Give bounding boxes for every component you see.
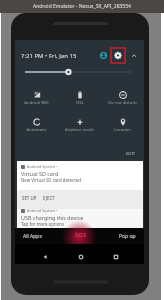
button[interactable]	[15, 91, 58, 99]
staticText: Pop up	[119, 233, 136, 240]
staticText: All Apps	[23, 233, 42, 240]
button[interactable]	[58, 118, 101, 126]
button[interactable]: Back	[42, 254, 48, 260]
staticText: EJECT	[43, 195, 55, 201]
button[interactable]: EJECT	[42, 195, 56, 201]
button[interactable]: Recent apps	[113, 254, 119, 260]
staticText: Virtual SD card	[21, 170, 59, 177]
staticText: Android System •	[27, 208, 58, 213]
staticText: Android Emulator - Nexus_5X_API_283554	[33, 3, 131, 10]
button[interactable]	[15, 118, 58, 126]
staticText: Airplane mode	[65, 127, 94, 133]
staticText: DSL	[76, 100, 84, 106]
staticText: New Virtual SD card detected	[21, 177, 81, 183]
staticText: Do not disturb	[108, 100, 137, 106]
staticText: USB charging this device	[21, 214, 84, 221]
button[interactable]	[101, 91, 144, 99]
button[interactable]	[58, 91, 101, 99]
staticText: 7:21 PM • Fri, Jan 15	[21, 52, 77, 60]
button[interactable]: Android System •	[21, 164, 81, 183]
staticText: Location	[114, 127, 131, 133]
staticText: SET UP	[22, 195, 37, 201]
button[interactable]: All Apps	[23, 233, 42, 240]
staticText: Tap for more options	[21, 221, 65, 227]
button[interactable]: Android System •	[17, 209, 143, 228]
staticText: EDIT	[126, 151, 136, 157]
button[interactable]	[101, 118, 144, 126]
button[interactable]: Home	[78, 254, 84, 260]
button[interactable]: EDIT	[125, 150, 136, 157]
button[interactable]: SET UP	[21, 195, 38, 201]
staticText: SOS	[75, 231, 87, 239]
button[interactable]: SOS	[75, 231, 87, 239]
staticText: Android Wifi	[24, 100, 49, 106]
staticText: Android System •	[27, 164, 58, 169]
staticText: Automatic	[26, 127, 47, 133]
button[interactable]: User account	[100, 52, 107, 59]
button[interactable]: Settings	[111, 48, 125, 63]
button[interactable]: Pop up	[119, 233, 136, 240]
button[interactable]: Expand	[130, 52, 138, 60]
